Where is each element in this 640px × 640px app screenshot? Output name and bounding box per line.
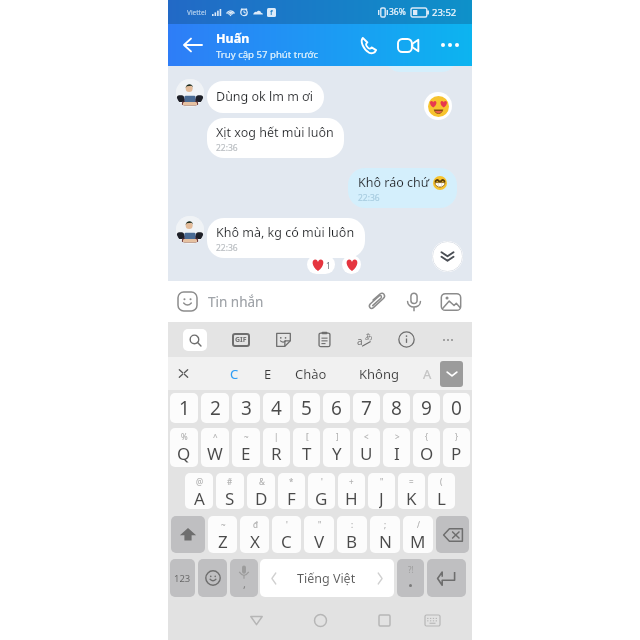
button[interactable]: C (218, 357, 251, 390)
button[interactable]: Back (171, 24, 213, 66)
button[interactable]: Chào (283, 357, 339, 390)
button[interactable]: Home (300, 600, 340, 640)
button[interactable]: 8 (383, 393, 410, 423)
button[interactable]: Emoji keyboard (198, 559, 227, 597)
button[interactable]: : (337, 516, 367, 553)
button[interactable]: Voice call (348, 24, 388, 66)
button[interactable]: ~ (232, 428, 260, 467)
staticText: đ (253, 519, 258, 530)
button[interactable]: Tiếng Việt (260, 559, 394, 597)
button[interactable]: / (403, 516, 433, 553)
staticText: 23:52 (432, 6, 457, 19)
staticText: 8 (391, 395, 402, 421)
button[interactable]: < (353, 428, 380, 467)
button[interactable]: Recent apps (364, 600, 404, 640)
button[interactable]: * (278, 473, 305, 509)
staticText: U (360, 442, 373, 465)
staticText: あ (365, 331, 374, 341)
staticText: Truy cập 57 phút trước (216, 48, 319, 61)
staticText: ^ (213, 431, 218, 442)
button[interactable]: Dùng ok lm m ơi (207, 81, 324, 113)
button[interactable]: > (383, 428, 410, 467)
button[interactable]: } (443, 428, 470, 467)
button[interactable]: đ (240, 516, 269, 553)
button[interactable]: Gallery (437, 281, 465, 322)
staticText: GIF (235, 335, 247, 345)
button[interactable]: ( (428, 473, 455, 509)
button[interactable]: Voice input (230, 559, 258, 597)
button[interactable]: Emoji (174, 281, 200, 322)
button[interactable]: Stickers (275, 331, 292, 348)
button[interactable]: Không (348, 357, 410, 390)
button[interactable]: Back (236, 600, 276, 640)
staticText: " (318, 519, 322, 530)
button[interactable]: 5 (293, 393, 320, 423)
button[interactable]: GIF (232, 333, 250, 347)
button[interactable]: % (170, 428, 198, 467)
button[interactable]: " (304, 516, 334, 553)
button[interactable]: 1 (170, 393, 198, 423)
button[interactable]: Enter (427, 559, 466, 597)
button[interactable]: Shift (171, 516, 205, 553)
staticText: Tin nhắn (208, 293, 264, 311)
button[interactable]: Love reaction, 1 (307, 255, 335, 274)
staticText: A (194, 487, 205, 509)
staticText: < (364, 431, 369, 442)
button[interactable]: Xịt xog hết mùi luôn (207, 118, 344, 158)
button[interactable]: Collapse suggestions (172, 357, 194, 390)
button[interactable]: ?! (397, 559, 424, 597)
button[interactable]: 3 (232, 393, 260, 423)
button[interactable]: 4 (263, 393, 290, 423)
button[interactable]: Expand suggestions (440, 361, 463, 387)
button[interactable]: Clipboard (316, 331, 333, 348)
button[interactable]: Khô mà, kg có mùi luôn (207, 218, 365, 258)
button[interactable]: # (216, 473, 244, 509)
button[interactable]: ; (370, 516, 400, 553)
button[interactable]: Scroll to bottom (432, 241, 463, 272)
button[interactable]: 9 (413, 393, 440, 423)
button[interactable]: 2 (201, 393, 229, 423)
button[interactable]: 6 (323, 393, 350, 423)
staticText: Dùng ok lm m ơi (216, 88, 314, 105)
button[interactable]: ' (308, 473, 335, 509)
button[interactable]: Attach file (364, 281, 390, 322)
button[interactable]: ] (323, 428, 350, 467)
button[interactable]: 123 (170, 559, 195, 597)
button[interactable]: [ (293, 428, 320, 467)
staticText: 3 (241, 395, 252, 421)
staticText: 0 (451, 395, 462, 421)
staticText: 7 (361, 395, 372, 421)
button[interactable]: + (338, 473, 365, 509)
button[interactable]: Hide keyboard (412, 600, 452, 640)
button[interactable]: Khô ráo chứ (348, 168, 457, 208)
button[interactable]: | (263, 428, 290, 467)
button[interactable]: Info (398, 331, 415, 348)
button[interactable]: { (413, 428, 440, 467)
button[interactable]: Backspace (436, 516, 469, 553)
button[interactable]: ~ (208, 516, 237, 553)
staticText: | (274, 431, 279, 442)
button[interactable]: 7 (353, 393, 380, 423)
button[interactable]: ' (272, 516, 301, 553)
button[interactable]: @ (185, 473, 213, 509)
staticText: N (379, 530, 392, 553)
staticText: B (346, 530, 358, 553)
button[interactable]: More (439, 331, 456, 348)
button[interactable]: Translate (357, 331, 374, 348)
button[interactable]: ^ (201, 428, 229, 467)
staticText: ( (440, 476, 443, 487)
button[interactable]: Voice message (401, 281, 427, 322)
button[interactable]: Video call (388, 24, 428, 66)
button[interactable]: = (398, 473, 425, 509)
button[interactable]: " (368, 473, 395, 509)
button[interactable]: Search (183, 329, 207, 351)
button[interactable]: 0 (443, 393, 470, 423)
staticText: Xịt xog hết mùi luôn (216, 124, 334, 141)
button[interactable]: More options (430, 24, 470, 66)
button[interactable]: E (254, 357, 282, 390)
staticText: 22:36 (358, 192, 380, 204)
button[interactable]: & (247, 473, 275, 509)
staticText: 22:36 (216, 142, 238, 154)
button[interactable]: Love reaction (342, 255, 361, 274)
staticText: O (420, 442, 434, 465)
